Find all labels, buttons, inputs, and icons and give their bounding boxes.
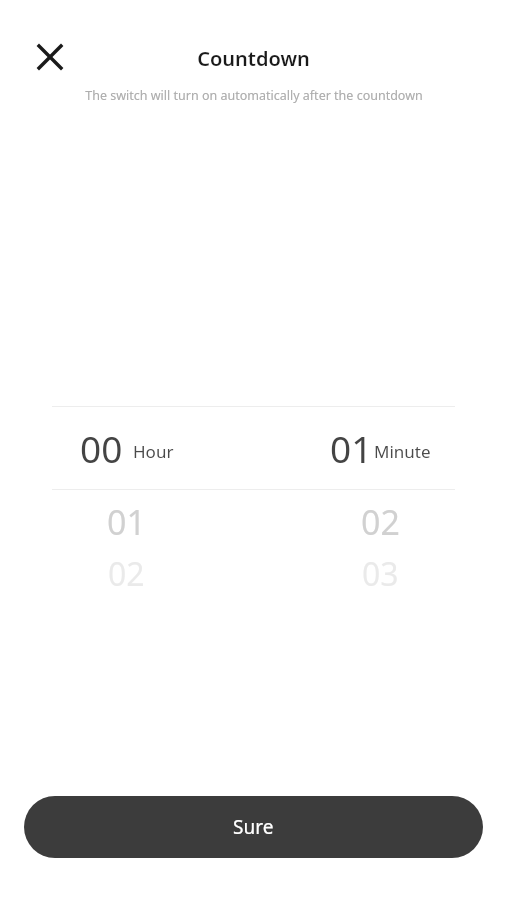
staticText: Minute: [374, 440, 431, 463]
staticText: Hour: [133, 440, 174, 463]
button[interactable]: Sure: [24, 796, 483, 858]
staticText: 00: [80, 423, 123, 473]
staticText: 02: [361, 499, 400, 545]
staticText: 03: [362, 552, 399, 596]
button[interactable]: 01: [0, 494, 253, 606]
staticText: 01: [107, 499, 146, 545]
staticText: 02: [108, 552, 145, 596]
staticText: The switch will turn on automatically af…: [85, 87, 423, 104]
button[interactable]: 02: [253, 494, 507, 606]
button[interactable]: Close: [30, 37, 70, 77]
button[interactable]: 00: [0, 406, 253, 489]
staticText: Sure: [233, 814, 274, 840]
staticText: Countdown: [197, 45, 310, 72]
staticText: 01: [330, 423, 373, 473]
button[interactable]: 01: [253, 406, 507, 489]
